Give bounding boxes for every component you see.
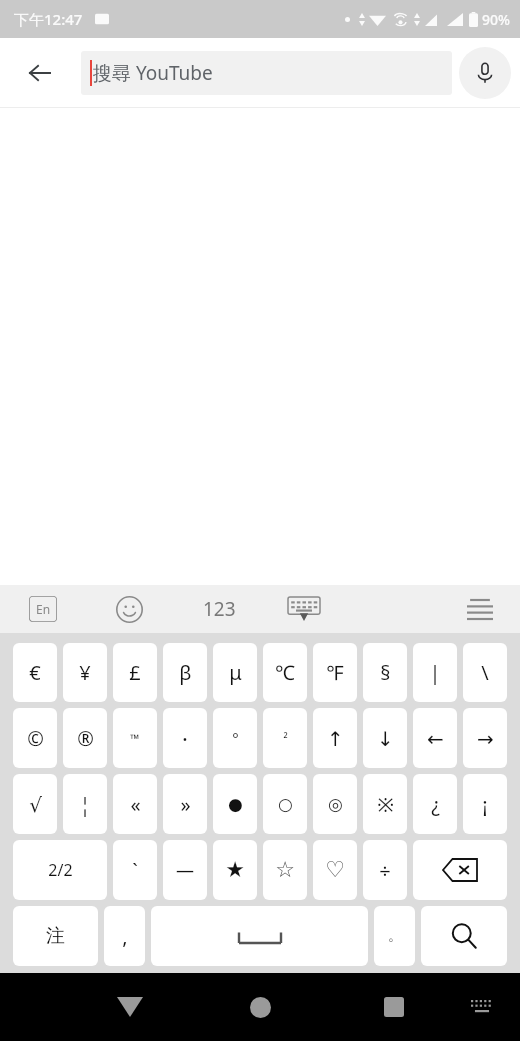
button[interactable]: — xyxy=(163,840,207,900)
button[interactable]: ™ xyxy=(113,708,157,768)
button[interactable]: 。 xyxy=(374,906,415,966)
button[interactable]: Delete xyxy=(413,840,507,900)
staticText: ○ xyxy=(278,794,293,814)
button[interactable]: 注 xyxy=(13,906,98,966)
staticText: « xyxy=(130,791,141,818)
button[interactable]: « xyxy=(113,774,157,834)
button[interactable]: ◎ xyxy=(313,774,357,834)
button[interactable]: Recents xyxy=(368,981,420,1033)
button[interactable]: ℃ xyxy=(263,643,307,702)
button[interactable]: ° xyxy=(213,708,257,768)
button[interactable]: ← xyxy=(413,708,457,768)
button[interactable]: Emoji xyxy=(108,588,150,630)
button[interactable]: Back xyxy=(12,45,68,101)
staticText: ※ xyxy=(377,791,394,818)
staticText: → xyxy=(477,727,494,750)
staticText: ★ xyxy=(225,857,245,883)
button[interactable]: Voice search xyxy=(459,47,511,99)
staticText: § xyxy=(380,659,391,686)
button[interactable]: β xyxy=(163,643,207,702)
button[interactable]: Hide keyboard xyxy=(281,586,327,632)
staticText: ¿ xyxy=(431,791,440,818)
button[interactable]: ※ xyxy=(363,774,407,834)
staticText: | xyxy=(429,659,441,686)
button[interactable]: \ xyxy=(463,643,507,702)
button[interactable]: ★ xyxy=(213,840,257,900)
button[interactable]: 2/2 xyxy=(13,840,107,900)
staticText: ← xyxy=(427,727,444,750)
staticText: 注 xyxy=(46,924,65,948)
staticText: ° xyxy=(232,728,239,748)
staticText: ¡ xyxy=(482,791,488,818)
button[interactable]: 搜尋 YouTube xyxy=(81,51,452,95)
staticText: ¥ xyxy=(79,659,91,686)
staticText: ` xyxy=(132,857,138,884)
button[interactable]: Space xyxy=(151,906,368,966)
button[interactable]: ¥ xyxy=(63,643,107,702)
staticText: ® xyxy=(77,725,94,752)
button[interactable]: § xyxy=(363,643,407,702)
button[interactable]: μ xyxy=(213,643,257,702)
staticText: ÷ xyxy=(379,857,391,884)
staticText: , xyxy=(122,923,128,950)
button[interactable]: Search xyxy=(421,906,507,966)
staticText: ¦ xyxy=(79,791,91,818)
staticText: £ xyxy=(129,659,141,686)
button[interactable]: ¦ xyxy=(63,774,107,834)
staticText: En xyxy=(36,601,51,617)
button[interactable]: ¿ xyxy=(413,774,457,834)
button[interactable]: ℉ xyxy=(313,643,357,702)
button[interactable]: Language xyxy=(22,588,64,630)
button[interactable]: © xyxy=(13,708,57,768)
button[interactable]: √ xyxy=(13,774,57,834)
staticText: » xyxy=(180,791,191,818)
button[interactable]: , xyxy=(104,906,145,966)
staticText: ℃ xyxy=(275,659,295,686)
staticText: 搜尋 YouTube xyxy=(93,60,213,86)
staticText: 2/2 xyxy=(48,859,73,881)
staticText: ℉ xyxy=(326,659,344,686)
button[interactable]: ® xyxy=(63,708,107,768)
button[interactable]: ● xyxy=(213,774,257,834)
button[interactable]: ÷ xyxy=(363,840,407,900)
staticText: ☆ xyxy=(275,857,295,883)
staticText: ™ xyxy=(130,730,140,746)
staticText: © xyxy=(27,725,44,752)
button[interactable]: · xyxy=(163,708,207,768)
staticText: ↑ xyxy=(327,727,344,750)
button[interactable]: | xyxy=(413,643,457,702)
button[interactable]: » xyxy=(163,774,207,834)
staticText: √ xyxy=(29,793,42,816)
button[interactable]: ↓ xyxy=(363,708,407,768)
button[interactable]: → xyxy=(463,708,507,768)
button[interactable]: ☆ xyxy=(263,840,307,900)
staticText: 90% xyxy=(482,10,510,29)
button[interactable]: ` xyxy=(113,840,157,900)
button[interactable]: 123 xyxy=(195,585,243,633)
staticText: · xyxy=(182,723,188,753)
button[interactable]: Switch keyboard xyxy=(458,983,506,1031)
button[interactable]: ♡ xyxy=(313,840,357,900)
staticText: μ xyxy=(229,659,242,686)
button[interactable]: Back xyxy=(104,981,156,1033)
button[interactable]: ○ xyxy=(263,774,307,834)
staticText: ♡ xyxy=(325,857,345,883)
button[interactable]: Menu xyxy=(458,587,502,631)
staticText: 下午12:47 xyxy=(14,9,83,29)
button[interactable]: Home xyxy=(234,981,286,1033)
staticText: \ xyxy=(481,659,489,686)
staticText: — xyxy=(176,858,194,883)
button[interactable]: € xyxy=(13,643,57,702)
button[interactable]: ¡ xyxy=(463,774,507,834)
staticText: 123 xyxy=(203,596,236,622)
staticText: β xyxy=(179,659,192,686)
staticText: ↓ xyxy=(377,727,394,750)
staticText: 。 xyxy=(388,927,402,945)
button[interactable]: ↑ xyxy=(313,708,357,768)
staticText: ² xyxy=(283,730,288,746)
button[interactable]: ² xyxy=(263,708,307,768)
button[interactable]: £ xyxy=(113,643,157,702)
staticText: ● xyxy=(228,794,243,814)
staticText: € xyxy=(29,659,41,686)
staticText: ◎ xyxy=(328,794,343,814)
